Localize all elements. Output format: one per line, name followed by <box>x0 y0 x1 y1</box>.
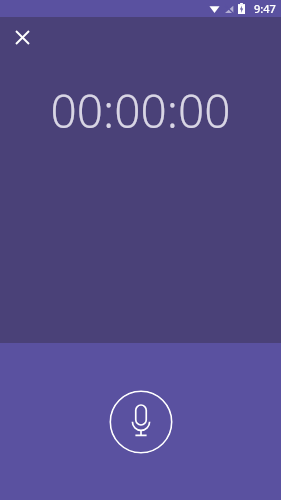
button[interactable]: Record with microphone <box>109 390 173 454</box>
button[interactable]: Close <box>8 23 36 51</box>
staticText: 00:00:00 <box>0 79 281 142</box>
staticText: 9:47 <box>254 1 276 16</box>
